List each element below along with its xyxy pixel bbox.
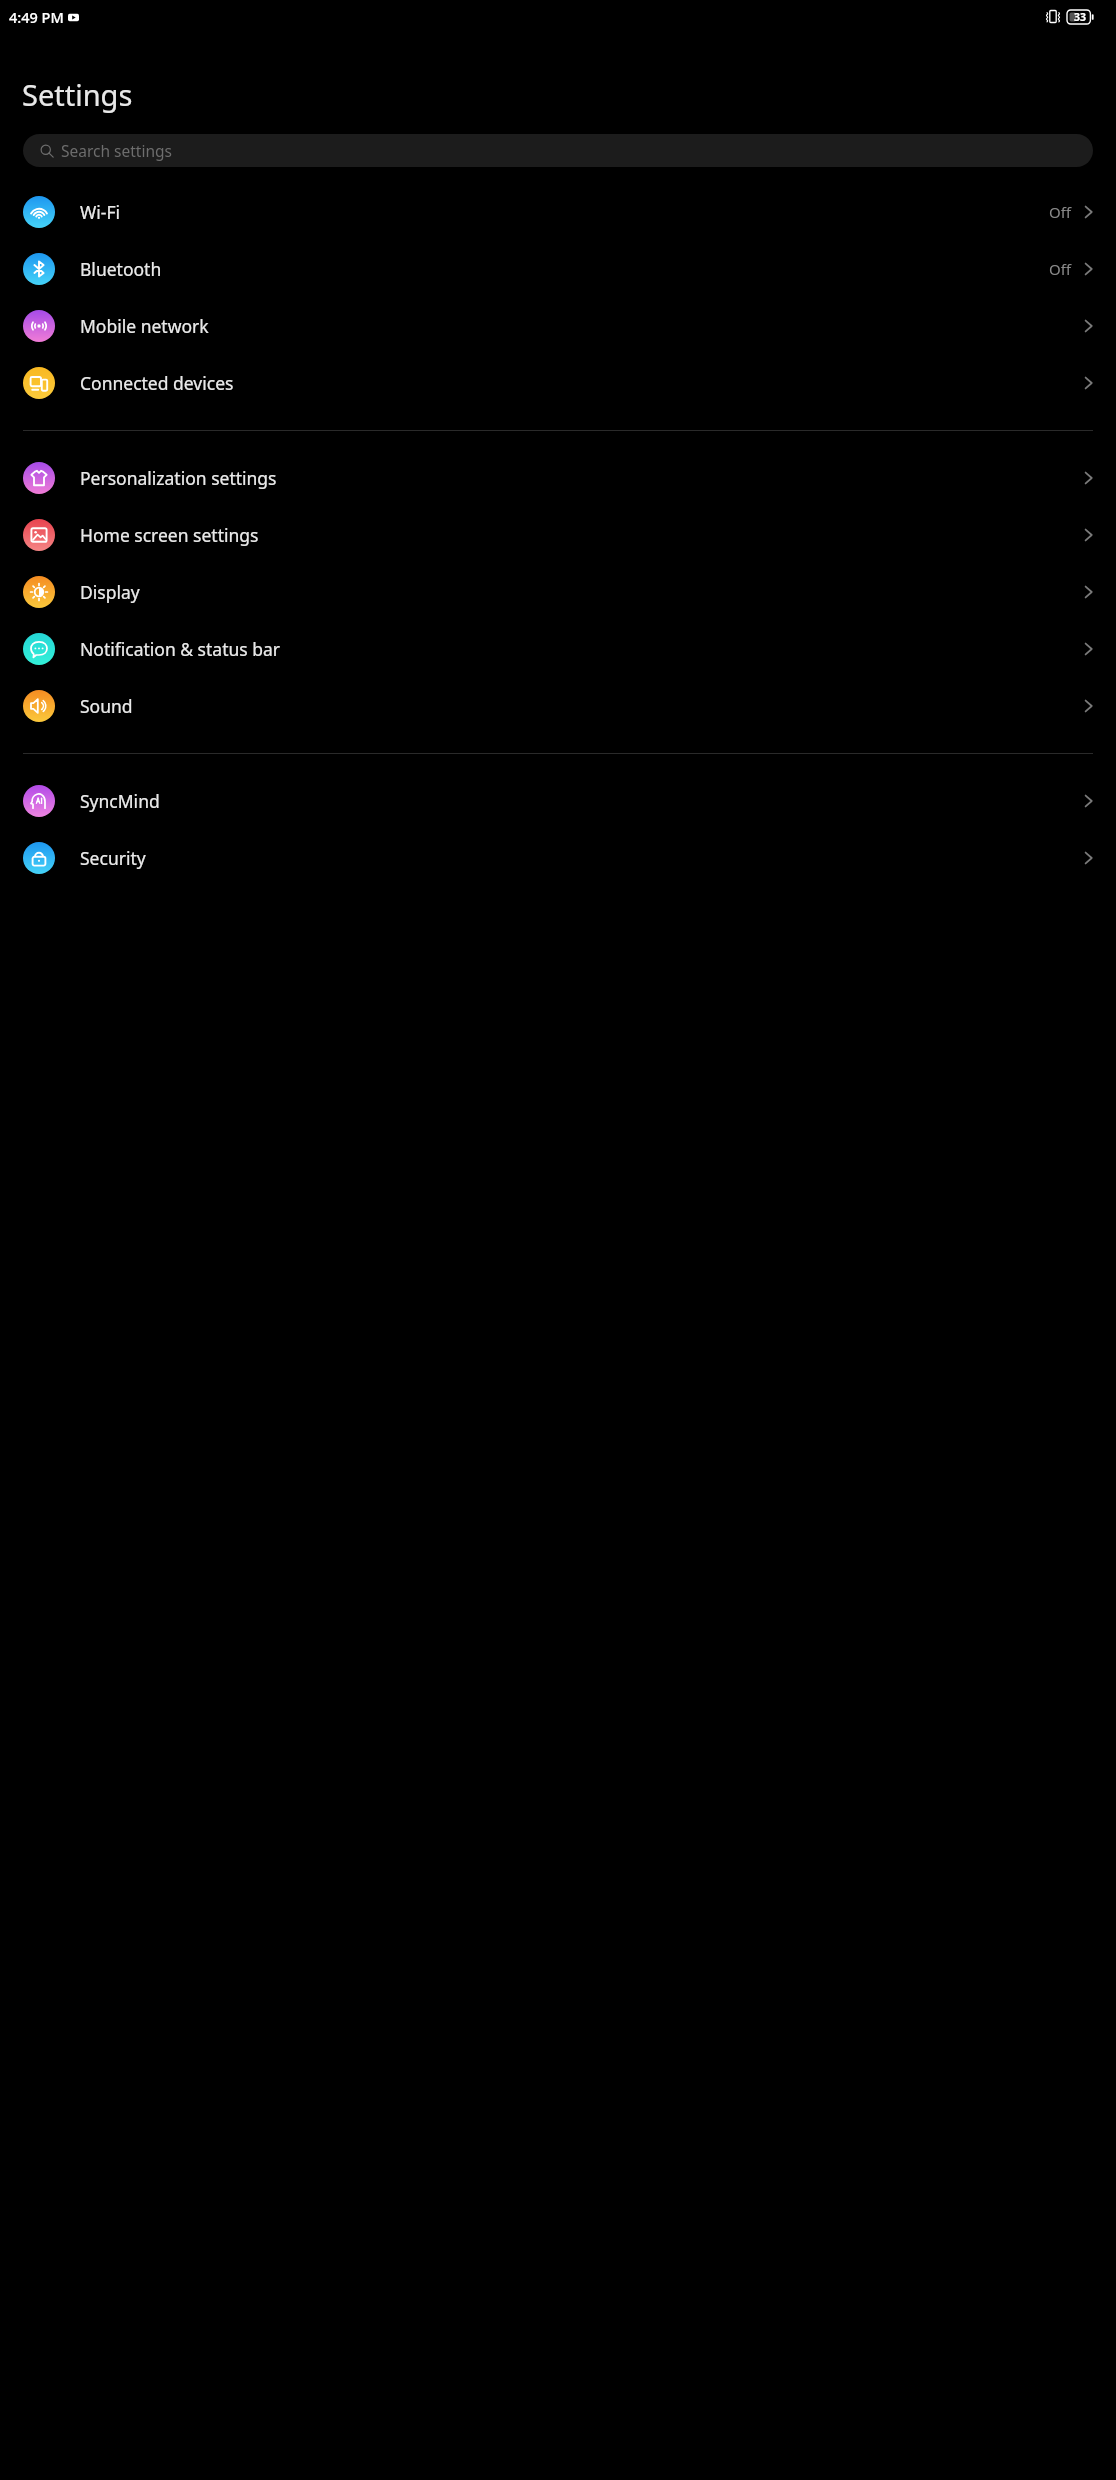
staticText: Mobile network (80, 314, 209, 338)
staticText: 4:49 PM (9, 7, 64, 27)
button[interactable]: Display (0, 563, 1116, 620)
button[interactable]: Connected devices (0, 354, 1116, 411)
staticText: Display (80, 580, 140, 604)
staticText: SyncMind (80, 789, 160, 813)
staticText: Wi-Fi (80, 200, 121, 224)
staticText: Settings (22, 75, 133, 114)
staticText: Home screen settings (80, 523, 259, 547)
staticText: 33 (1074, 10, 1087, 24)
staticText: Personalization settings (80, 466, 277, 490)
button[interactable]: Sound (0, 677, 1116, 734)
button[interactable]: Personalization settings (0, 449, 1116, 506)
button[interactable]: Home screen settings (0, 506, 1116, 563)
button[interactable]: Mobile network (0, 297, 1116, 354)
button[interactable]: Security (0, 829, 1116, 886)
staticText: Security (80, 846, 146, 870)
button[interactable]: Wi-Fi (0, 183, 1116, 240)
staticText: Notification & status bar (80, 637, 281, 661)
staticText: Off (1049, 202, 1072, 222)
button[interactable]: SyncMind (0, 772, 1116, 829)
button[interactable]: Bluetooth (0, 240, 1116, 297)
staticText: Bluetooth (80, 257, 162, 281)
button[interactable]: Notification & status bar (0, 620, 1116, 677)
staticText: Connected devices (80, 371, 234, 395)
button[interactable]: Search settings (23, 134, 1093, 167)
staticText: Search settings (61, 140, 172, 161)
staticText: Off (1049, 259, 1072, 279)
staticText: Sound (80, 694, 133, 718)
